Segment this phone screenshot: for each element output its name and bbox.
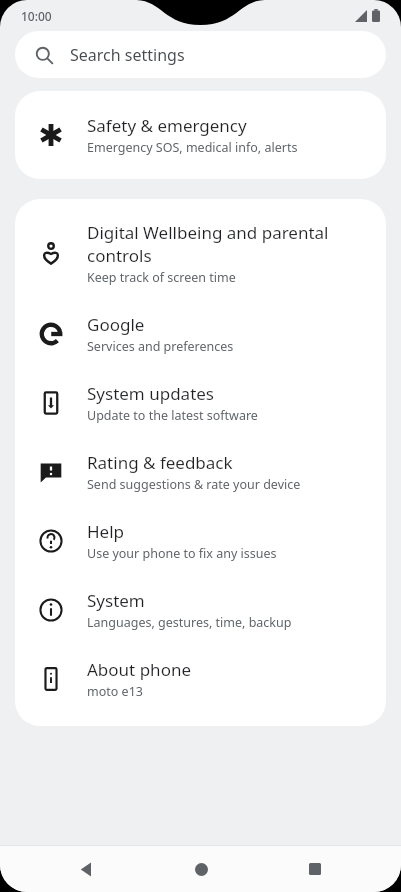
staticText: Send suggestions & rate your device [87,476,301,493]
staticText: Update to the latest software [87,407,258,424]
staticText: moto e13 [87,683,143,700]
button[interactable]: System updates [15,368,386,437]
staticText: System [87,589,145,612]
staticText: Google [87,313,145,336]
button[interactable]: System [15,575,386,644]
staticText: Help [87,520,125,543]
staticText: System updates [87,382,215,405]
staticText: About phone [87,658,192,681]
staticText: Digital Wellbeing and parental controls [87,221,364,267]
staticText: Keep track of screen time [87,269,236,286]
staticText: Services and preferences [87,338,234,355]
button[interactable]: Search settings [15,31,386,78]
button[interactable]: Safety & emergency [15,91,386,179]
button[interactable]: Recent apps [287,846,343,892]
button[interactable]: Home [173,846,229,892]
button[interactable]: Back [58,846,114,892]
staticText: Rating & feedback [87,451,233,474]
staticText: Safety & emergency [87,114,247,137]
staticText: 10:00 [21,8,52,24]
button[interactable]: Rating & feedback [15,437,386,506]
staticText: Use your phone to fix any issues [87,545,277,562]
staticText: Languages, gestures, time, backup [87,614,292,631]
button[interactable]: Help [15,506,386,575]
button[interactable]: Google [15,299,386,368]
button[interactable]: About phone [15,644,386,726]
button[interactable]: Digital Wellbeing and parental controls [15,199,386,299]
staticText: Search settings [70,44,185,66]
staticText: Emergency SOS, medical info, alerts [87,139,298,156]
